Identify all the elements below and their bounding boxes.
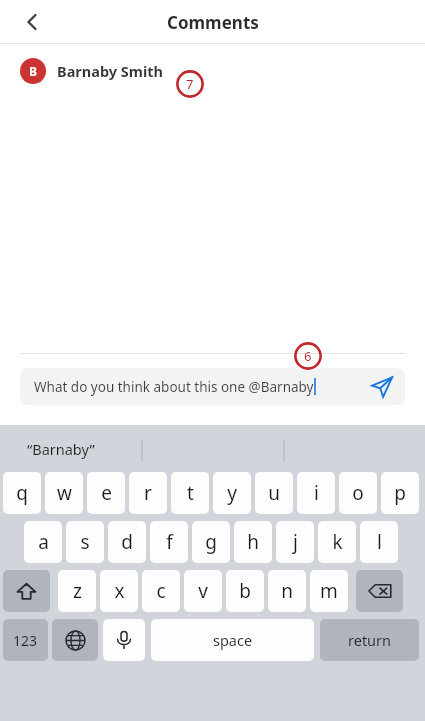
- button[interactable]: Change keyboard language: [52, 619, 98, 661]
- button[interactable]: t: [171, 472, 209, 514]
- button[interactable]: What do you think about this one @Barnab…: [20, 368, 405, 405]
- staticText: r: [144, 480, 152, 506]
- staticText: o: [352, 480, 364, 506]
- button[interactable]: Send: [363, 368, 401, 405]
- staticText: g: [205, 529, 217, 555]
- staticText: t: [187, 480, 194, 506]
- staticText: i: [314, 480, 319, 506]
- staticText: f: [166, 529, 173, 555]
- button[interactable]: d: [108, 521, 146, 563]
- button[interactable]: o: [339, 472, 377, 514]
- button[interactable]: c: [142, 570, 180, 612]
- staticText: 7: [186, 75, 194, 93]
- staticText: h: [247, 529, 259, 555]
- button[interactable]: a: [24, 521, 62, 563]
- button[interactable]: j: [276, 521, 314, 563]
- staticText: n: [281, 578, 293, 604]
- button[interactable]: “Barnaby”: [27, 439, 95, 459]
- staticText: d: [121, 529, 133, 555]
- button[interactable]: p: [381, 472, 419, 514]
- staticText: c: [156, 578, 166, 604]
- staticText: e: [101, 480, 112, 506]
- staticText: w: [57, 480, 72, 506]
- button[interactable]: Backspace: [356, 570, 403, 612]
- button[interactable]: h: [234, 521, 272, 563]
- staticText: z: [73, 578, 82, 604]
- staticText: y: [227, 480, 237, 506]
- button[interactable]: i: [297, 472, 335, 514]
- staticText: 123: [13, 631, 38, 650]
- button[interactable]: m: [310, 570, 348, 612]
- staticText: q: [16, 480, 28, 506]
- button[interactable]: x: [100, 570, 138, 612]
- button[interactable]: q: [3, 472, 41, 514]
- button[interactable]: n: [268, 570, 306, 612]
- button[interactable]: v: [184, 570, 222, 612]
- button[interactable]: u: [255, 472, 293, 514]
- staticText: What do you think about this one @Barnab…: [34, 378, 314, 396]
- button[interactable]: f: [150, 521, 188, 563]
- staticText: m: [320, 578, 338, 604]
- button[interactable]: b: [226, 570, 264, 612]
- staticText: p: [394, 480, 406, 506]
- button[interactable]: Voice input: [103, 619, 145, 661]
- button[interactable]: Shift: [3, 570, 50, 612]
- staticText: Barnaby Smith: [57, 61, 164, 81]
- staticText: space: [213, 630, 253, 650]
- staticText: k: [332, 529, 343, 555]
- staticText: j: [293, 529, 298, 555]
- staticText: u: [268, 480, 280, 506]
- staticText: l: [377, 529, 382, 555]
- staticText: a: [38, 529, 49, 555]
- staticText: return: [348, 630, 392, 650]
- button[interactable]: Back: [14, 5, 48, 39]
- button[interactable]: l: [360, 521, 398, 563]
- button[interactable]: e: [87, 472, 125, 514]
- button[interactable]: B: [0, 44, 425, 98]
- button[interactable]: return: [320, 619, 419, 661]
- button[interactable]: y: [213, 472, 251, 514]
- button[interactable]: g: [192, 521, 230, 563]
- staticText: 6: [304, 347, 312, 365]
- staticText: b: [239, 578, 251, 604]
- staticText: B: [29, 63, 37, 79]
- staticText: x: [114, 578, 125, 604]
- staticText: v: [198, 578, 208, 604]
- button[interactable]: w: [45, 472, 83, 514]
- staticText: s: [80, 529, 90, 555]
- staticText: Comments: [167, 11, 259, 34]
- button[interactable]: s: [66, 521, 104, 563]
- button[interactable]: r: [129, 472, 167, 514]
- button[interactable]: k: [318, 521, 356, 563]
- button[interactable]: space: [151, 619, 314, 661]
- button[interactable]: 123: [3, 619, 48, 661]
- button[interactable]: z: [58, 570, 96, 612]
